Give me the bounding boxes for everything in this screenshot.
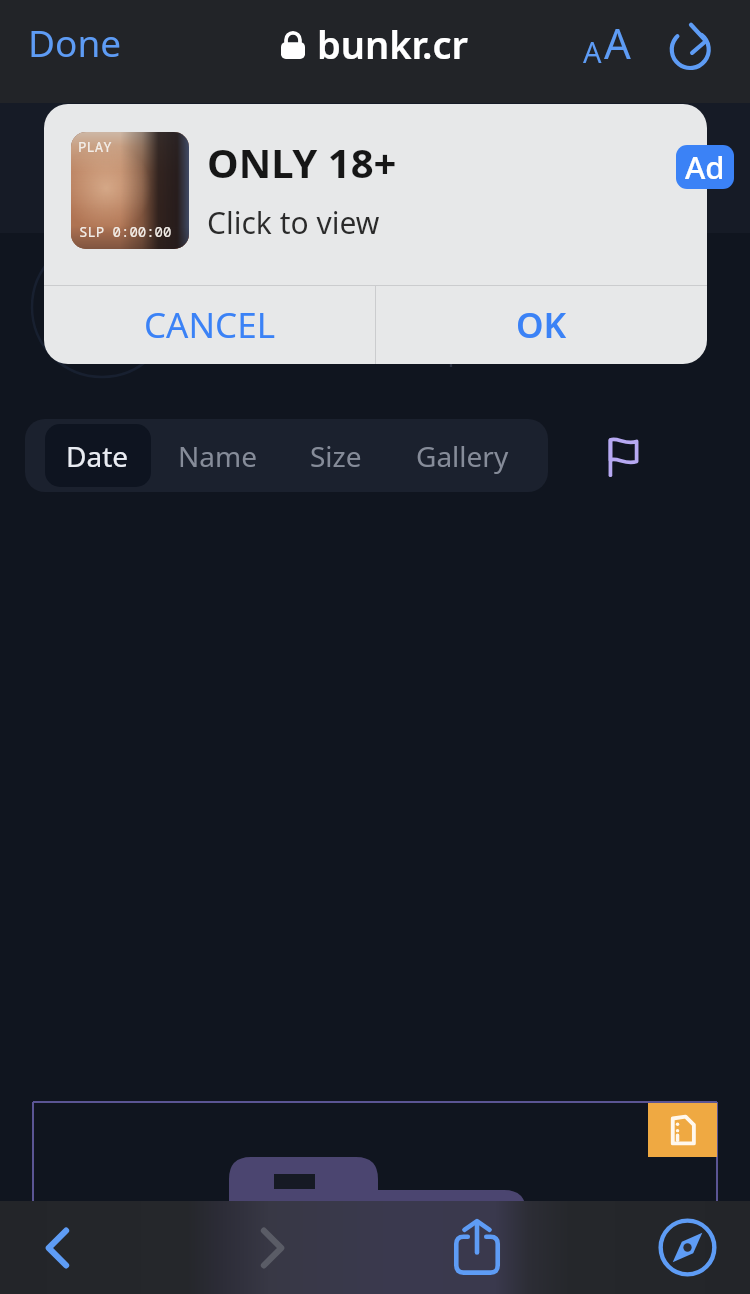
button[interactable]: Text size options: [571, 2, 643, 83]
button[interactable]: Date: [45, 424, 151, 487]
staticText: PLAY: [78, 137, 112, 156]
staticText: Click to view: [207, 202, 380, 243]
button[interactable]: Report abuse: [598, 428, 648, 484]
button[interactable]: PLAY: [44, 104, 707, 285]
button[interactable]: Name: [151, 424, 284, 487]
button[interactable]: Bookmarks: [647, 1203, 728, 1292]
staticText: Date: [66, 437, 129, 475]
staticText: Name: [178, 437, 257, 475]
staticText: Done: [28, 17, 122, 67]
button[interactable]: Done: [11, 7, 139, 77]
button[interactable]: OK: [376, 286, 707, 364]
button[interactable]: Reload page: [658, 12, 726, 80]
button[interactable]: File: [648, 1103, 717, 1157]
staticText: ONLY 18+: [207, 135, 397, 189]
button[interactable]: Ad: [676, 145, 734, 189]
button[interactable]: Size: [284, 424, 389, 487]
button[interactable]: Forward: [232, 1204, 312, 1292]
staticText: Ad: [685, 146, 725, 188]
staticText: Album · 2,432 files · updated: [150, 331, 538, 368]
button[interactable]: Back: [18, 1204, 98, 1292]
staticText: OK: [516, 301, 567, 349]
staticText: A: [583, 32, 602, 71]
staticText: SLP 0:00:00: [79, 222, 172, 241]
staticText: Size: [310, 437, 362, 475]
button[interactable]: CANCEL: [44, 286, 375, 364]
button[interactable]: Share: [438, 1205, 516, 1291]
staticText: Gallery: [416, 437, 509, 475]
staticText: CANCEL: [144, 301, 276, 349]
staticText: bunkr.cr: [317, 18, 469, 70]
button[interactable]: Gallery: [389, 424, 536, 487]
staticText: A: [604, 14, 631, 71]
